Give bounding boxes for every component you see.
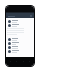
button[interactable]: Tab bbox=[27, 59, 32, 64]
button[interactable] bbox=[6, 19, 34, 23]
button[interactable] bbox=[6, 23, 34, 27]
button[interactable] bbox=[6, 37, 34, 41]
button[interactable] bbox=[6, 49, 34, 53]
button[interactable]: Tab bbox=[21, 59, 26, 64]
button[interactable]: Search bbox=[6, 13, 34, 18]
button[interactable]: Tab bbox=[14, 59, 19, 64]
button[interactable] bbox=[6, 45, 34, 49]
button[interactable]: Tab bbox=[8, 59, 13, 64]
button[interactable] bbox=[6, 41, 34, 45]
